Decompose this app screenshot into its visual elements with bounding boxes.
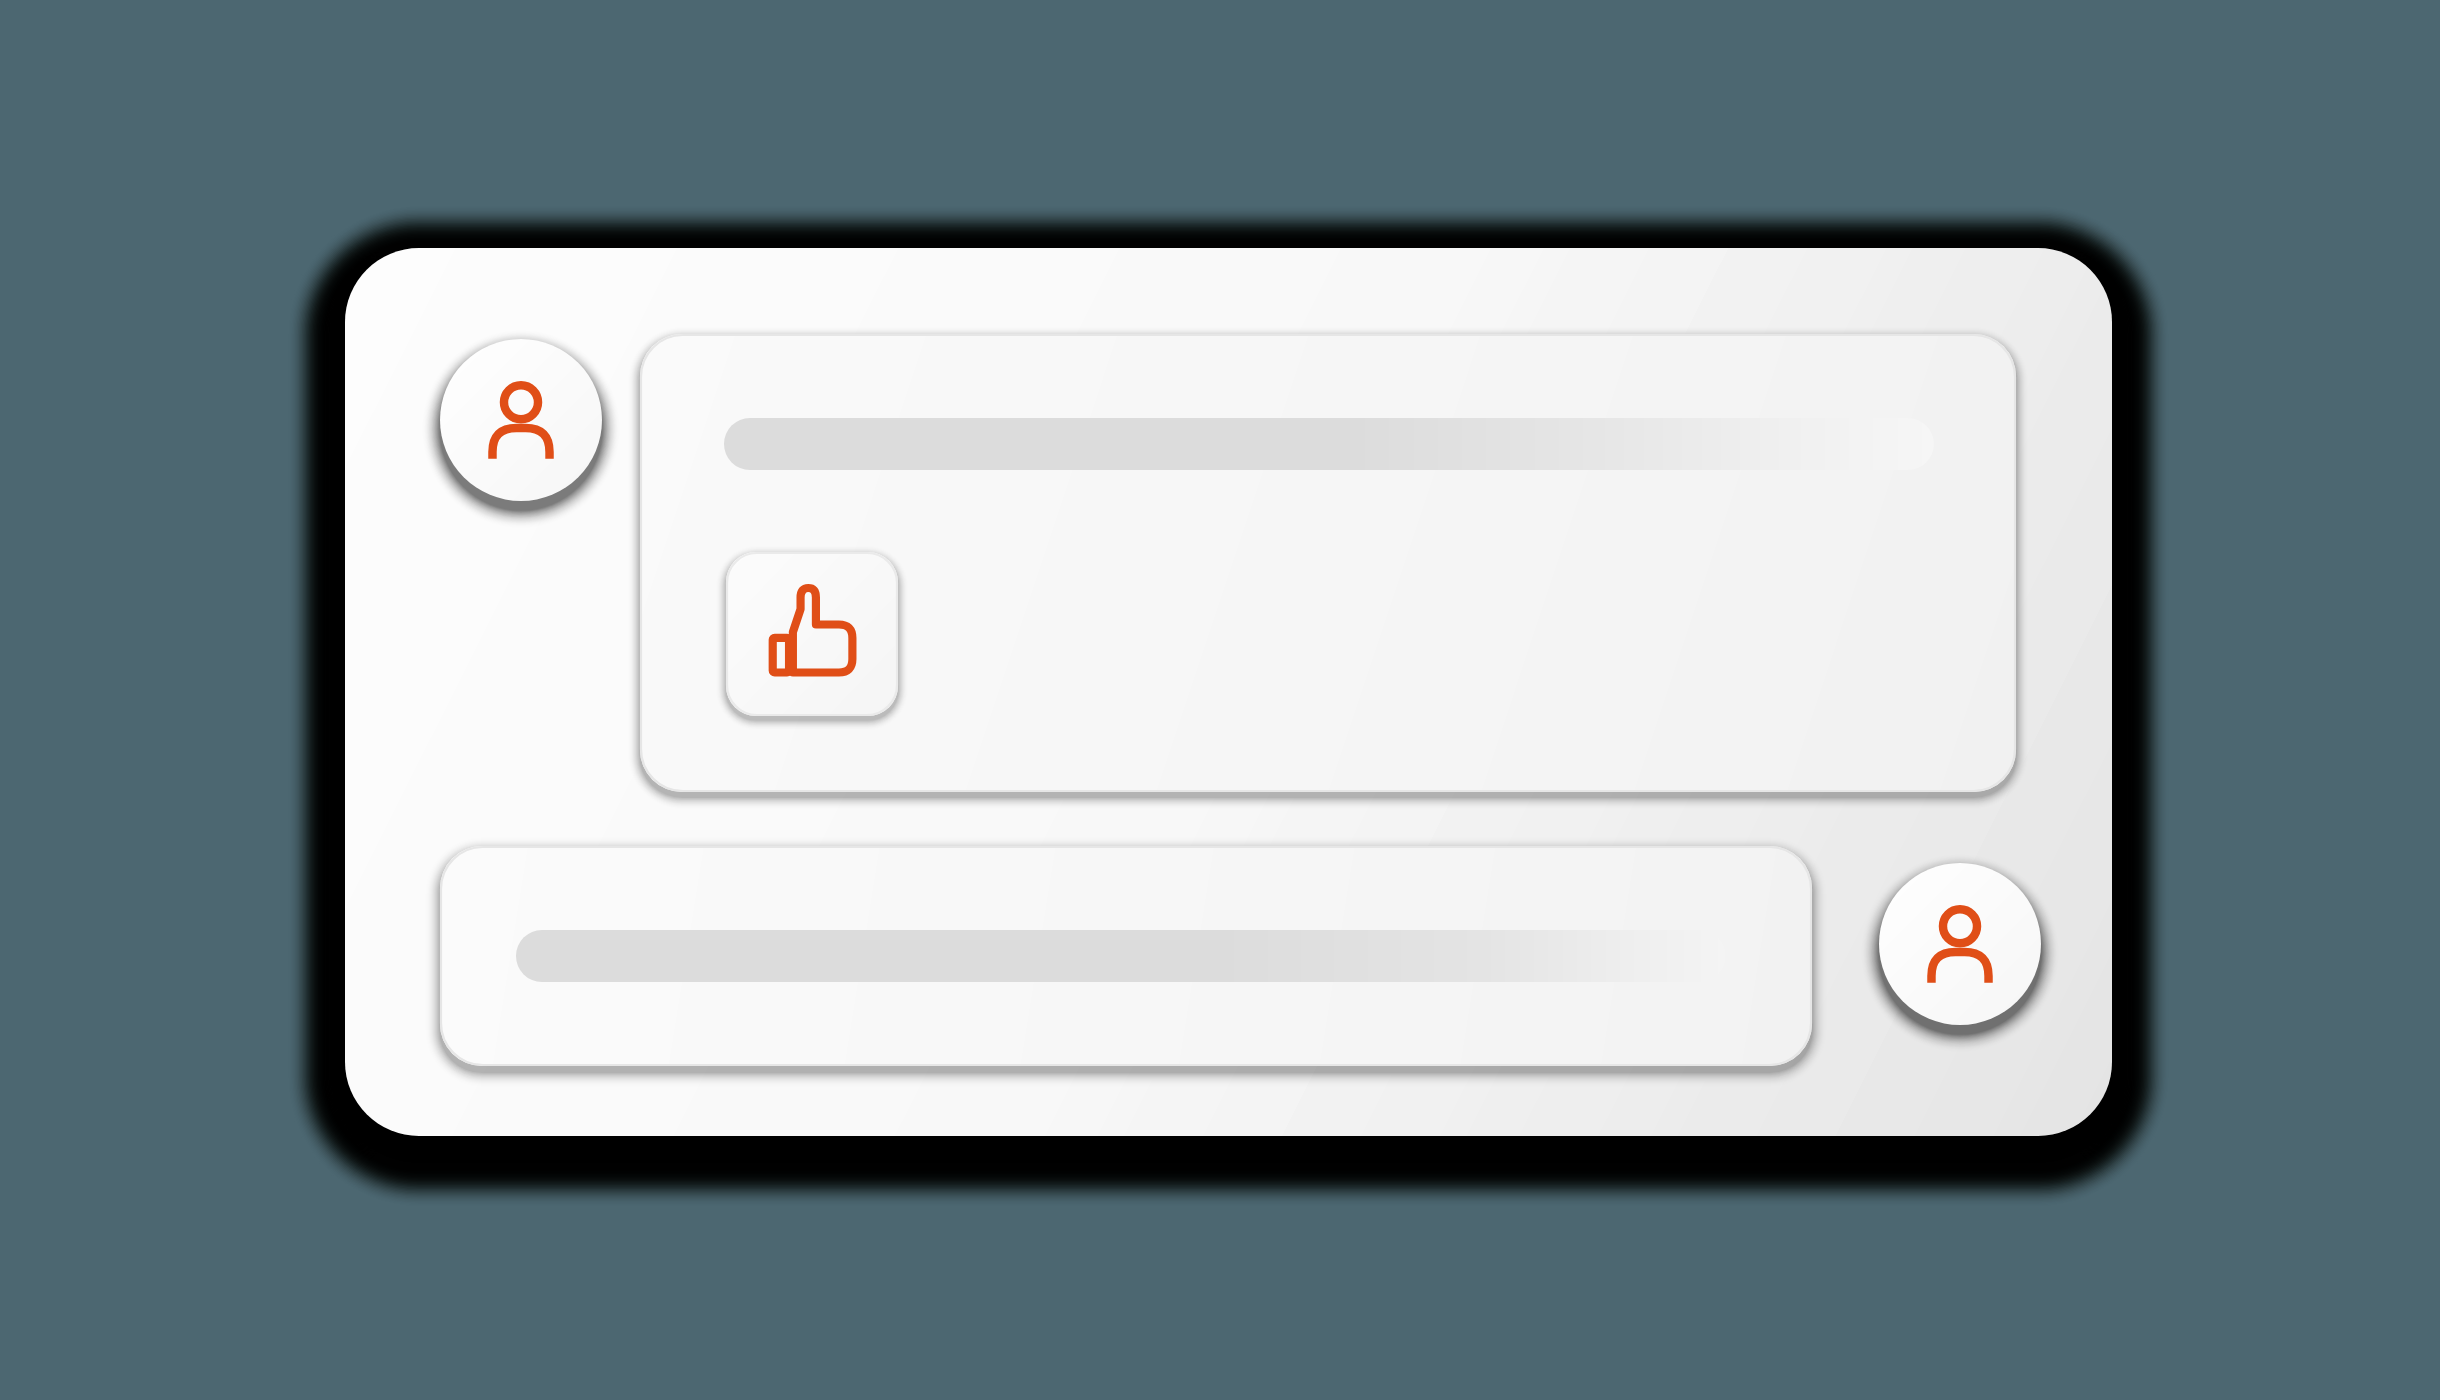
button[interactable]: Like	[726, 552, 898, 716]
button[interactable]: Comment	[440, 846, 1812, 1066]
button[interactable]: Post	[640, 334, 2016, 792]
button[interactable]: Profile	[440, 339, 602, 501]
button[interactable]: Profile	[1879, 863, 2041, 1025]
